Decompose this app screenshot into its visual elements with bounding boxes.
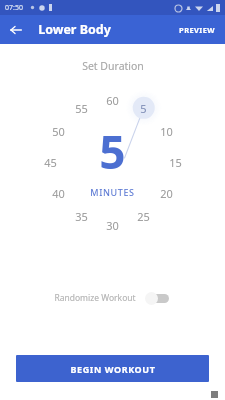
staticText: 30 [106, 218, 119, 233]
staticText: 5 [140, 101, 147, 116]
staticText: 35 [75, 209, 88, 224]
staticText: BEGIN WORKOUT [70, 363, 156, 375]
staticText: 60 [106, 93, 119, 108]
button[interactable] [145, 291, 171, 305]
staticText: 50 [52, 124, 65, 139]
staticText: 20 [160, 186, 173, 201]
button[interactable]: BEGIN WORKOUT [16, 355, 209, 382]
button[interactable]: PREVIEW [171, 19, 223, 41]
button[interactable]: Back [5, 19, 27, 41]
staticText: Set Duration [82, 59, 144, 73]
staticText: PREVIEW [179, 25, 215, 35]
staticText: 07:50 [5, 3, 23, 13]
staticText: 25 [137, 209, 150, 224]
staticText: MINUTES [90, 186, 135, 198]
staticText: Randomize Workout [54, 292, 136, 304]
staticText: 40 [52, 186, 65, 201]
staticText: Lower Body [38, 21, 111, 38]
staticText: 5 [99, 120, 126, 183]
staticText: 10 [160, 124, 173, 139]
staticText: 55 [75, 101, 88, 116]
button[interactable]: Randomize Workout [48, 287, 177, 309]
staticText: 15 [169, 155, 182, 170]
staticText: 45 [44, 155, 57, 170]
